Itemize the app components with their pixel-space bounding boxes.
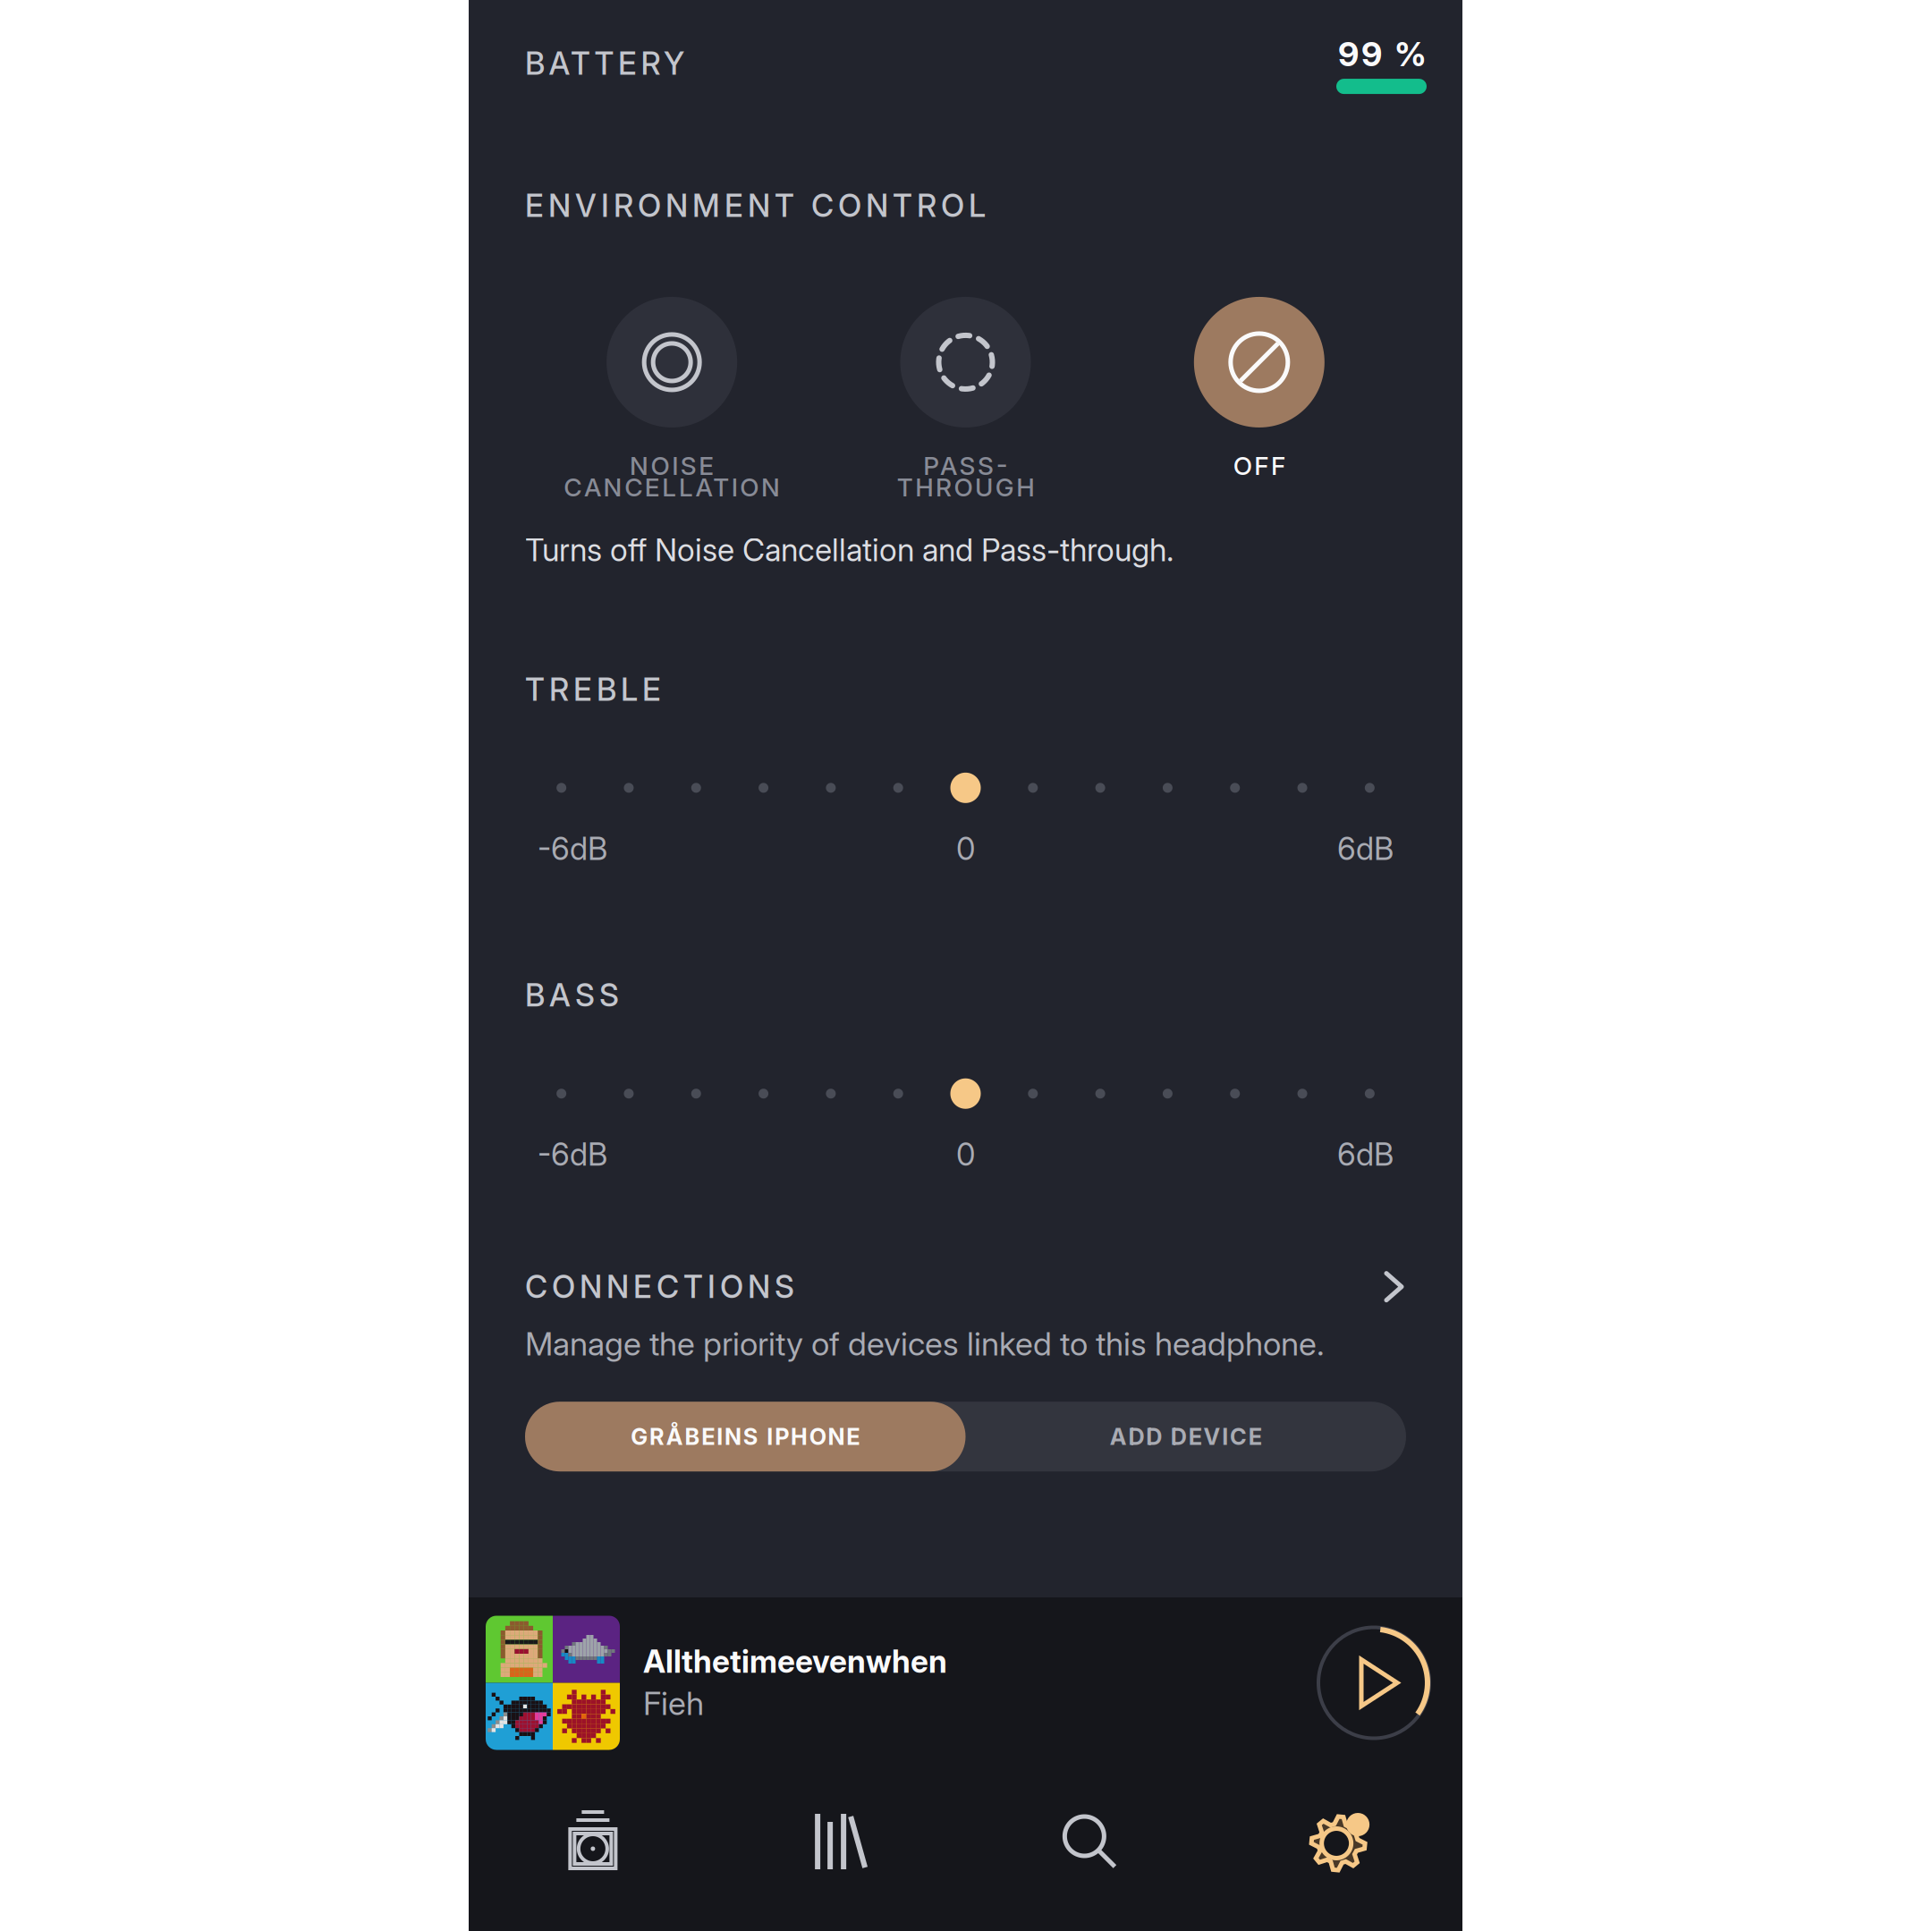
staticText: 99 % [1338,34,1427,74]
staticText: THROUGH [897,472,1034,502]
button[interactable]: ADD DEVICE [966,1402,1406,1471]
button[interactable]: Play [1318,1627,1429,1738]
staticText: PASS- [923,451,1008,481]
staticText: CONNECTIONS [525,1268,794,1305]
staticText: Allthetimeevenwhen [643,1643,947,1680]
button[interactable]: Library [717,1768,966,1931]
staticText: Turns off Noise Cancellation and Pass-th… [525,531,1174,569]
staticText: TREBLE [525,671,661,708]
button[interactable]: CONNECTIONS [469,1268,1462,1305]
staticText: 6dB [1337,830,1394,867]
staticText: Manage the priority of devices linked to… [525,1324,1325,1363]
staticText: Fieh [643,1684,704,1723]
staticText: 0 [956,830,975,867]
button[interactable]: Speakers [469,1768,717,1931]
staticText: -6dB [538,1136,607,1173]
button[interactable]: Settings [1214,1768,1462,1931]
button[interactable]: Noise Cancellation [525,297,819,499]
staticText: ADD DEVICE [1110,1423,1262,1450]
staticText: BATTERY [525,45,684,82]
staticText: 6dB [1337,1136,1394,1173]
staticText: BASS [525,977,619,1014]
button[interactable]: Pass-through [819,297,1112,499]
staticText: NOISE [630,451,714,481]
staticText: CANCELLATION [564,472,780,502]
button[interactable]: Search [966,1768,1214,1931]
button[interactable]: GRÅBEINS IPHONE [525,1402,966,1471]
staticText: -6dB [538,830,607,867]
staticText: 0 [956,1136,975,1173]
staticText: GRÅBEINS IPHONE [631,1423,860,1450]
staticText: OFF [1233,451,1285,481]
button[interactable]: Off [1112,297,1406,499]
staticText: ENVIRONMENT CONTROL [525,187,986,224]
